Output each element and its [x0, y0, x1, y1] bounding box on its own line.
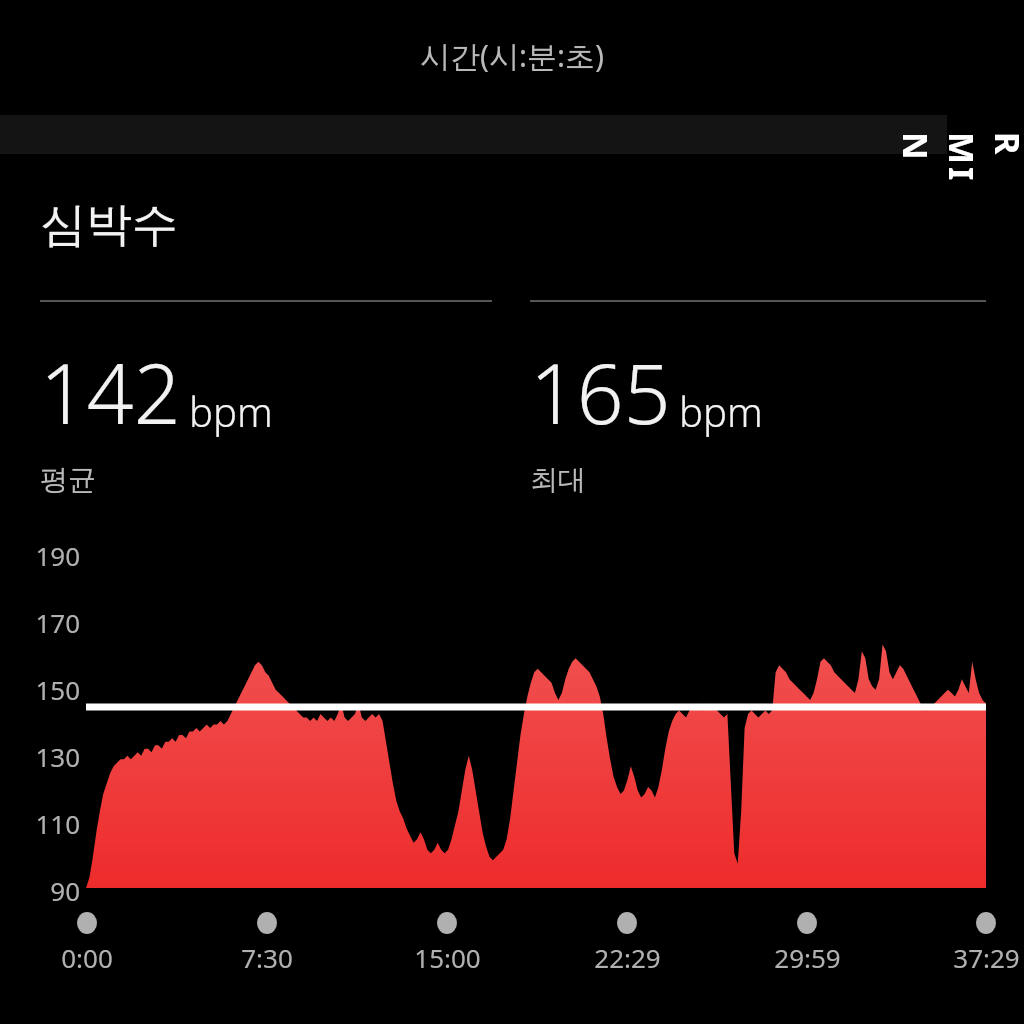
staticText: 심박수 [40, 196, 178, 254]
staticText: 165 [530, 336, 671, 448]
staticText: 130 [35, 739, 80, 774]
staticText: 평균 [40, 462, 96, 497]
staticText: 37:29 [953, 940, 1020, 975]
staticText: 15:00 [414, 940, 481, 975]
staticText: 142 [40, 336, 181, 448]
other: Garmin [957, 60, 1013, 260]
staticText: 22:29 [594, 940, 661, 975]
staticText: 0:00 [61, 940, 113, 975]
staticText: 170 [35, 605, 80, 640]
staticText: 7:30 [241, 940, 293, 975]
staticText: 최대 [530, 462, 586, 497]
staticText: bpm [189, 384, 273, 438]
staticText: 110 [35, 806, 80, 841]
staticText: 150 [35, 672, 80, 707]
button[interactable]: Average heart rate 142 bpm [40, 336, 480, 497]
staticText: 시간(시:분:초) [420, 35, 605, 76]
staticText: 90 [50, 873, 80, 908]
button[interactable]: Max heart rate 165 bpm [530, 336, 970, 497]
staticText: 29:59 [774, 940, 841, 975]
staticText: 190 [35, 538, 80, 573]
staticText: GARMIN [893, 132, 1024, 188]
staticText: bpm [679, 384, 763, 438]
